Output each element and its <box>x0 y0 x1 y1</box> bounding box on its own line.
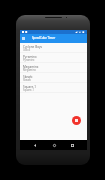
staticText: Pyraminx <box>23 55 37 59</box>
staticText: Skewb <box>23 75 33 79</box>
button[interactable]: Pyraminx <box>20 53 87 63</box>
staticText: Megaminx <box>23 65 39 69</box>
staticText: Square-1 <box>23 85 36 89</box>
staticText: SpeedCube Timer <box>32 36 56 40</box>
staticText: Skewb <box>23 78 31 82</box>
staticText: Pyraminx <box>23 58 35 62</box>
button[interactable]: Recent apps <box>69 142 75 148</box>
button[interactable]: Skewb <box>20 73 87 83</box>
staticText: Megaminx <box>23 68 36 72</box>
button[interactable]: Start timer <box>72 116 81 125</box>
button[interactable]: Open navigation menu <box>19 34 27 42</box>
button[interactable]: Megaminx <box>20 63 87 73</box>
button[interactable]: Square-1 <box>20 83 87 93</box>
button[interactable]: Home <box>51 142 57 148</box>
button[interactable]: Back <box>32 142 38 148</box>
staticText: 3x3x3 <box>23 48 31 52</box>
staticText: Cyclone Boys <box>23 45 43 49</box>
staticText: Square-1 <box>23 88 34 92</box>
button[interactable]: Cyclone Boys <box>20 43 87 53</box>
